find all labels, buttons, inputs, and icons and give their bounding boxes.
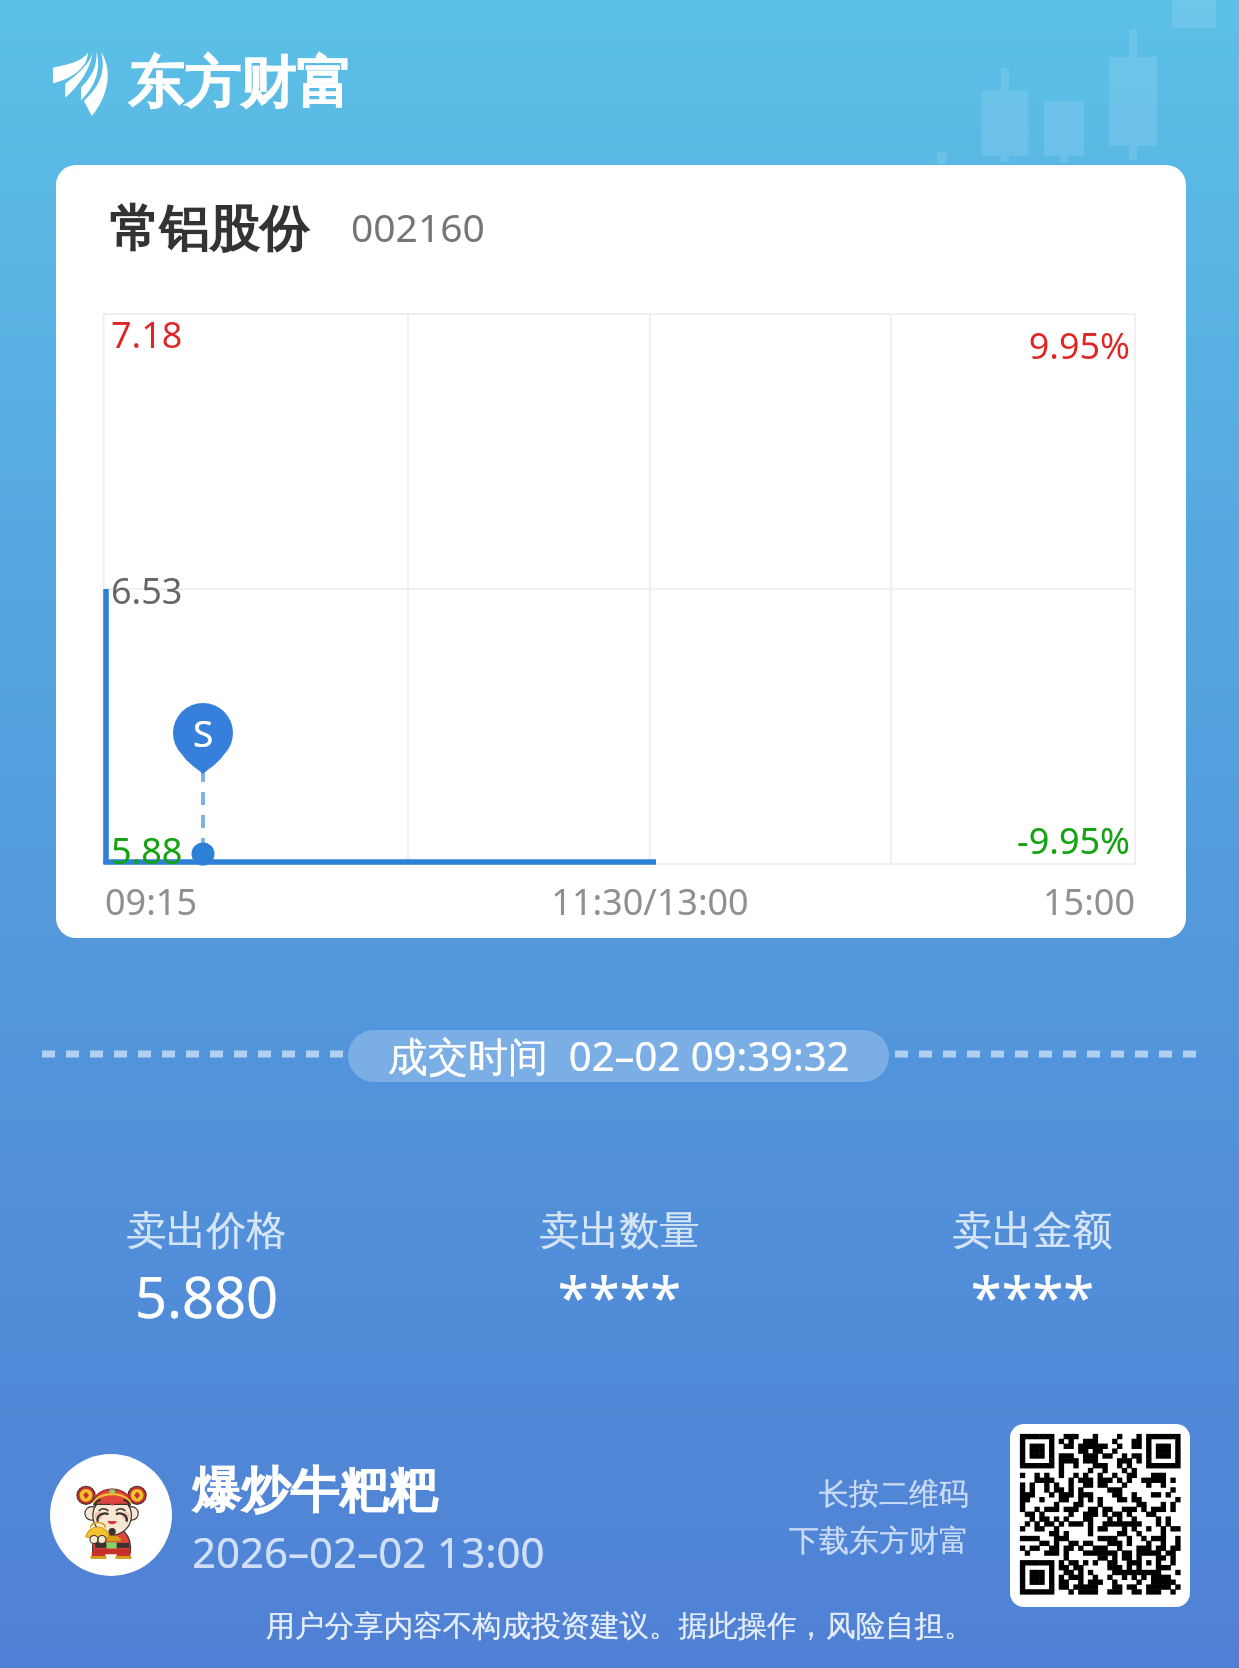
button[interactable]: 卖出价格: [0, 1205, 413, 1334]
staticText: 东方财富: [128, 48, 352, 119]
staticText: 5.880: [0, 1258, 413, 1334]
staticText: 002160: [351, 200, 485, 253]
button[interactable]: 成交时间 02–02 09:39:32: [348, 1030, 889, 1082]
staticText: 成交时间 02–02 09:39:32: [388, 1030, 850, 1080]
staticText: 9.95%: [700, 321, 1130, 370]
staticText: 6.53: [111, 566, 183, 615]
staticText: 2026–02–02 13:00: [192, 1523, 545, 1580]
button[interactable]: 常铝股份: [56, 165, 1186, 938]
staticText: ****: [413, 1258, 826, 1334]
staticText: 卖出数量: [413, 1205, 826, 1255]
staticText: 用户分享内容不构成投资建议。据此操作，风险自担。: [0, 1608, 1239, 1645]
staticText: 卖出价格: [0, 1205, 413, 1255]
staticText: 常铝股份: [109, 198, 309, 261]
button[interactable]: 用户头像: [50, 1454, 172, 1576]
button[interactable]: 东方财富 Logo: [48, 40, 352, 124]
staticText: S: [193, 707, 214, 757]
button[interactable]: 卖出金额: [826, 1205, 1239, 1334]
button[interactable]: 卖出数量: [413, 1205, 826, 1334]
staticText: -9.95%: [700, 816, 1130, 865]
staticText: 卖出金额: [826, 1205, 1239, 1255]
staticText: 11:30/13:00: [400, 877, 900, 926]
staticText: 15:00: [700, 877, 1135, 926]
button[interactable]: 二维码: [1010, 1424, 1190, 1607]
staticText: 下载东方财富: [789, 1522, 969, 1560]
staticText: 爆炒牛粑粑: [192, 1460, 437, 1522]
staticText: 长按二维码: [819, 1475, 969, 1513]
staticText: 5.88: [111, 826, 183, 875]
staticText: ****: [826, 1258, 1239, 1334]
other: 东方财富 Logo: [48, 47, 114, 117]
staticText: 09:15: [105, 877, 198, 926]
staticText: 7.18: [111, 310, 183, 359]
